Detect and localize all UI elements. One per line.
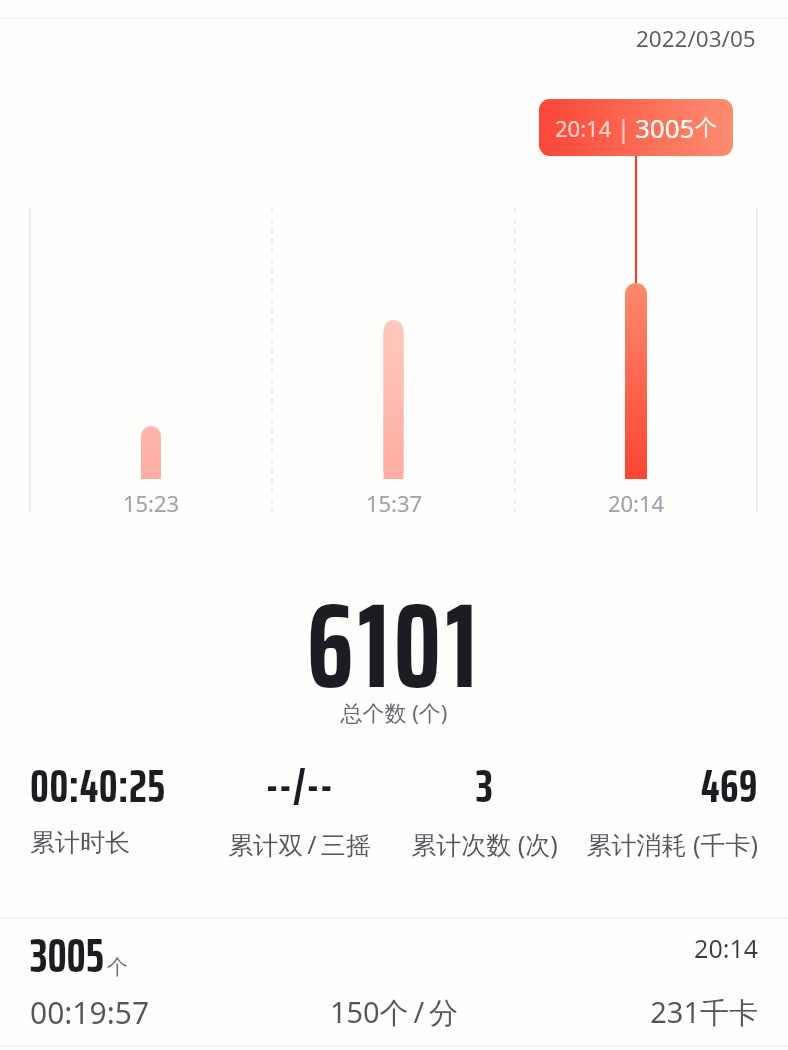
staticText: 累计消耗 (千卡) (577, 827, 758, 861)
button[interactable]: 2022/03/05 (0, 14, 788, 62)
button[interactable]: 3 (392, 749, 577, 861)
staticText: 3005 (30, 918, 104, 994)
staticText: 15:23 (91, 488, 211, 518)
staticText: 3005 (635, 110, 695, 145)
button[interactable]: 20:14 (576, 488, 696, 518)
staticText: 469 (577, 749, 758, 823)
staticText: 00:19:57 (30, 992, 150, 1033)
staticText: 个 (107, 954, 128, 980)
staticText: | (612, 110, 635, 145)
staticText: --/-- (207, 749, 392, 823)
staticText: 累计双 / 三摇 (207, 827, 392, 861)
staticText: 20:14 (0, 931, 758, 965)
staticText: 20:14 (555, 113, 612, 143)
staticText: 个 (695, 114, 717, 142)
staticText: 3 (392, 749, 577, 823)
staticText: 累计次数 (次) (392, 827, 577, 861)
staticText: 6101 (0, 552, 788, 739)
staticText: 150个 / 分 (0, 992, 788, 1032)
staticText: 2022/03/05 (636, 23, 756, 54)
staticText: 累计时长 (30, 827, 207, 858)
button[interactable]: 15:37 (334, 488, 454, 518)
button[interactable]: --/-- (207, 749, 392, 861)
button[interactable]: 00:40:25 (30, 749, 207, 858)
button[interactable]: 20:14 (539, 99, 733, 156)
staticText: 15:37 (334, 488, 454, 518)
button[interactable]: 469 (577, 749, 758, 861)
staticText: 20:14 (576, 488, 696, 518)
button[interactable]: 3005 (0, 918, 788, 1046)
button[interactable]: 15:23 (91, 488, 211, 518)
staticText: 231千卡 (0, 992, 758, 1032)
staticText: 00:40:25 (30, 749, 207, 823)
staticText: 总个数 (个) (0, 697, 788, 727)
